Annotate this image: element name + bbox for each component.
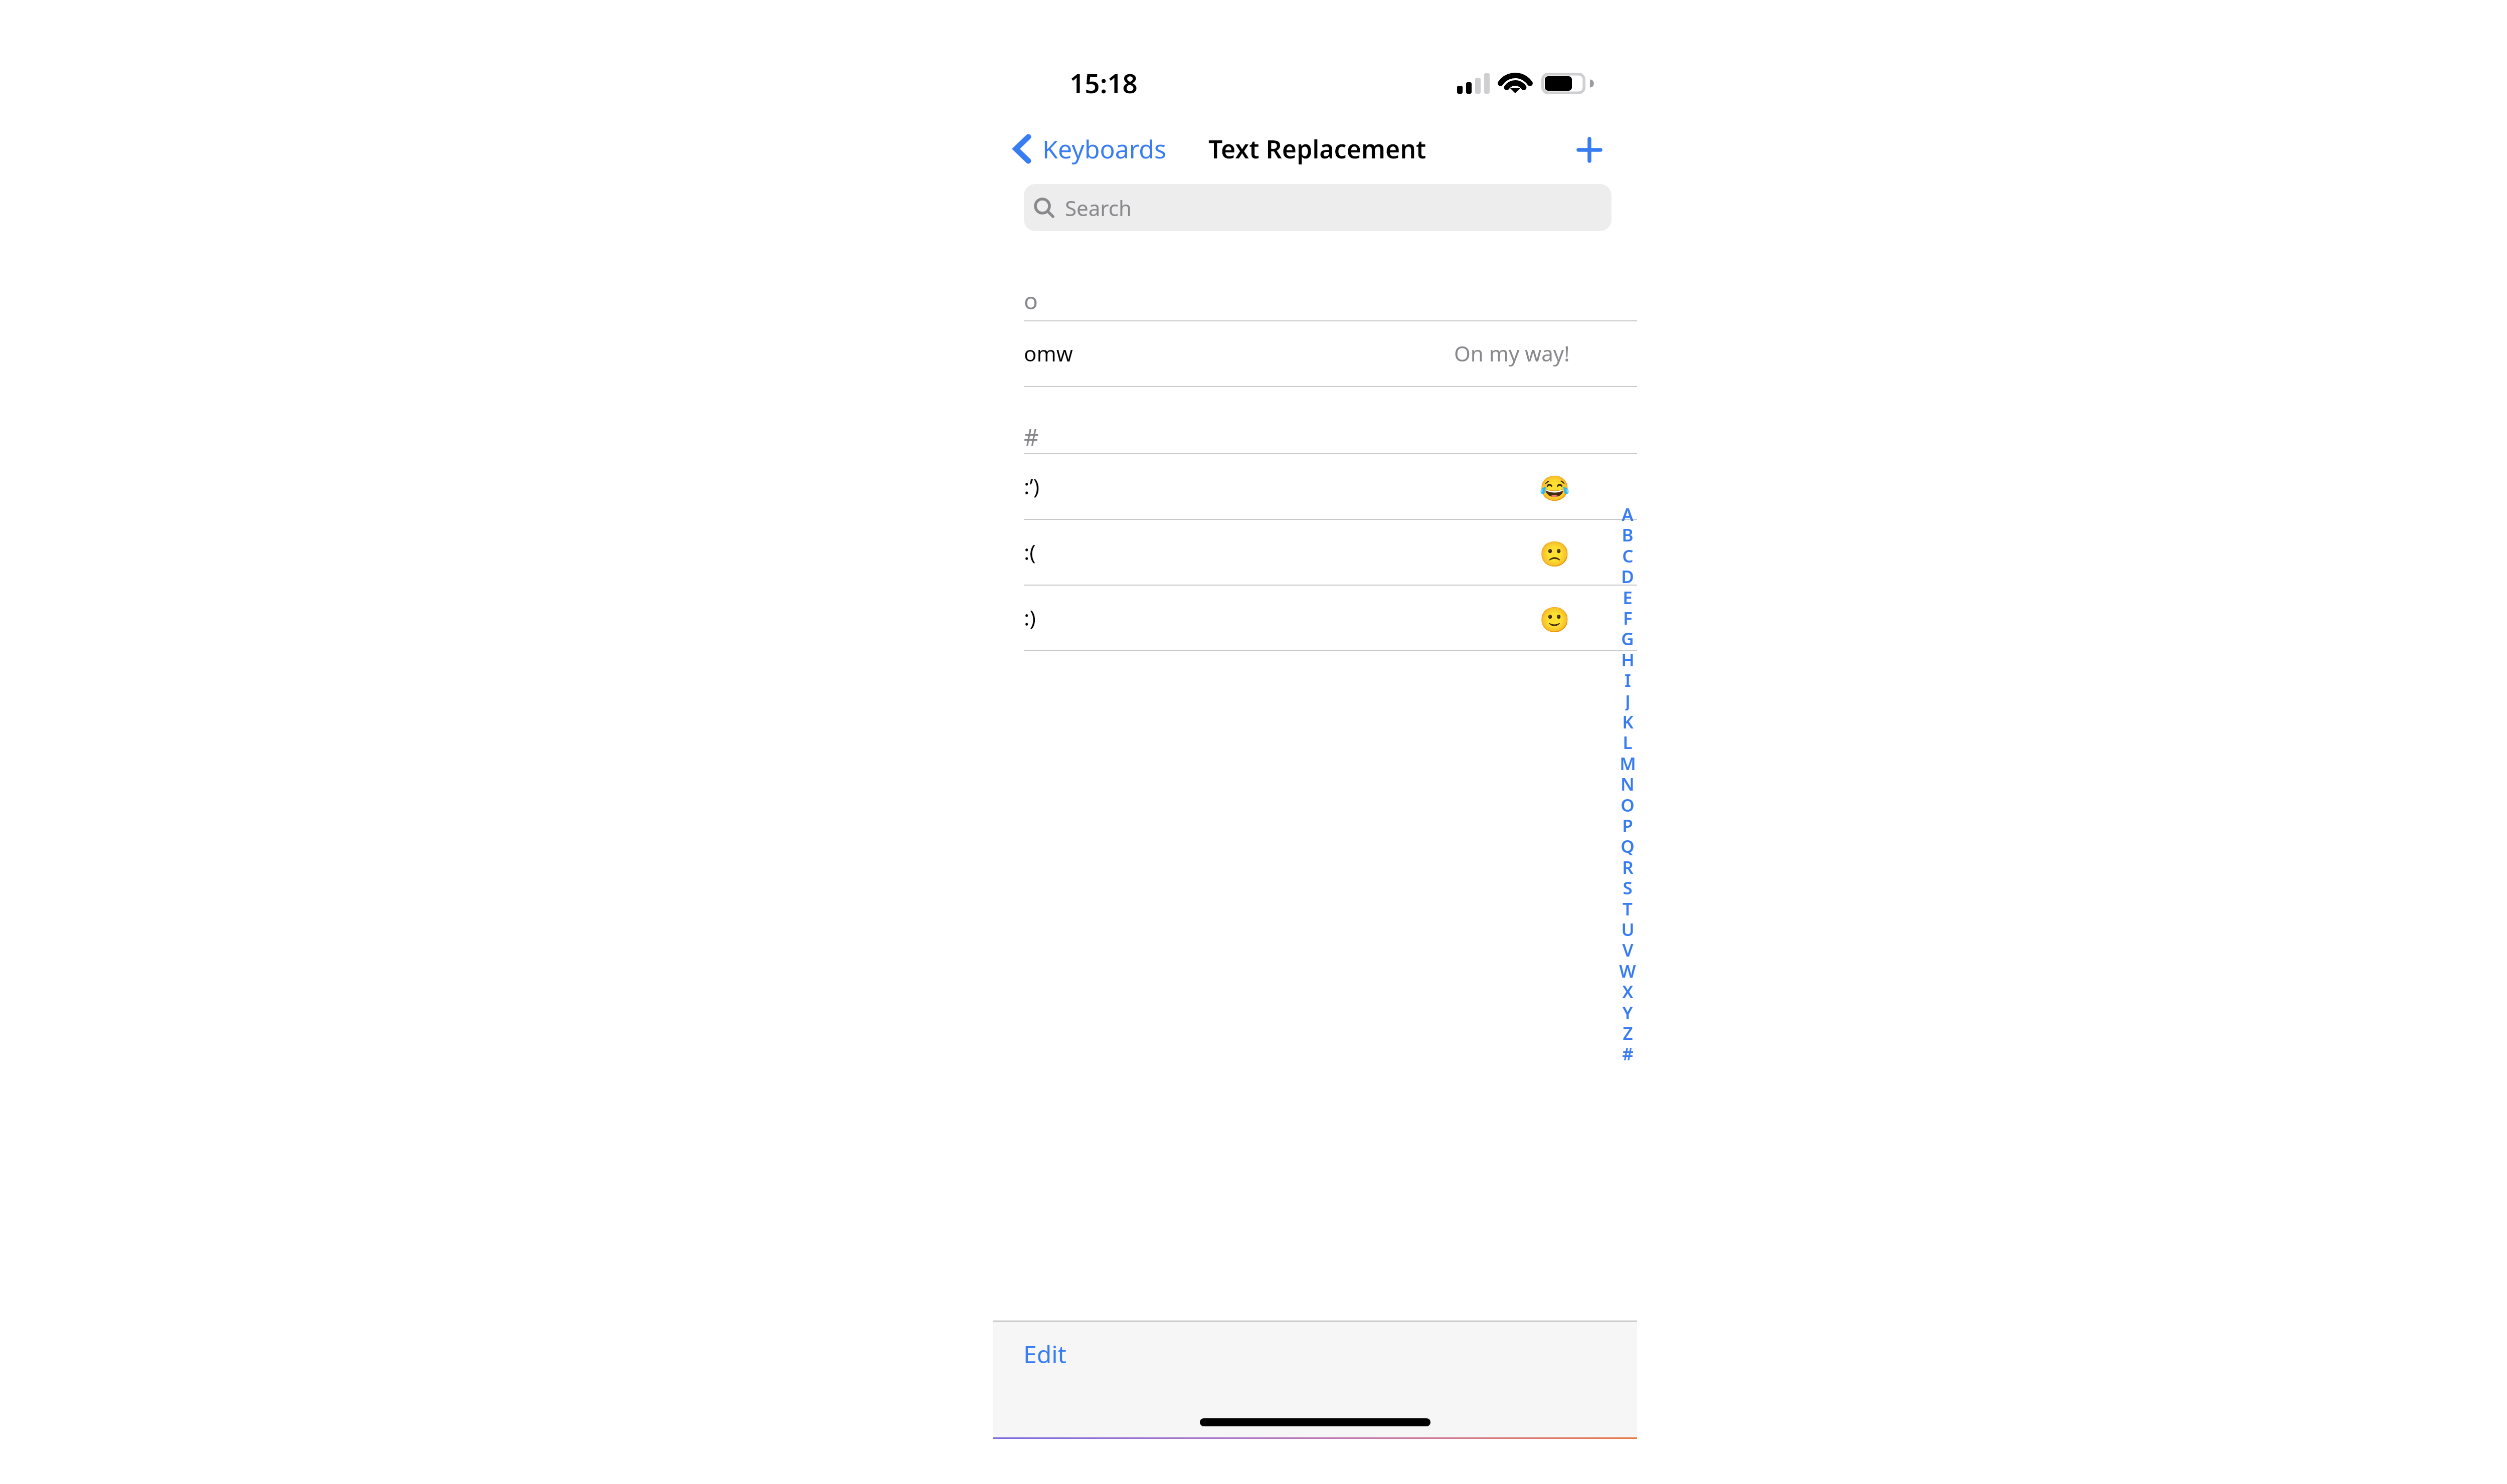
staticText: J — [1625, 689, 1631, 710]
staticText: Keyboards — [1042, 132, 1167, 166]
button[interactable]: F — [1613, 606, 1642, 627]
staticText: O — [1621, 793, 1635, 814]
staticText: o — [1024, 285, 1038, 315]
staticText: 😂 — [1539, 474, 1570, 503]
staticText: N — [1621, 772, 1635, 793]
button[interactable]: M — [1613, 752, 1642, 773]
button[interactable]: G — [1613, 627, 1642, 648]
button[interactable]: A — [1613, 502, 1642, 523]
button[interactable]: U — [1613, 917, 1642, 939]
staticText: # — [1622, 1042, 1634, 1063]
staticText: omw — [1024, 339, 1073, 367]
staticText: W — [1619, 959, 1636, 980]
button[interactable]: C — [1613, 544, 1642, 565]
staticText: P — [1622, 814, 1633, 835]
staticText: A — [1622, 502, 1634, 523]
button[interactable]: B — [1613, 523, 1642, 544]
staticText: F — [1623, 606, 1633, 627]
staticText: L — [1623, 730, 1633, 752]
staticText: T — [1623, 897, 1633, 918]
staticText: Q — [1621, 834, 1635, 855]
button[interactable]: E — [1613, 586, 1642, 607]
staticText: 🙂 — [1539, 606, 1570, 634]
button[interactable]: L — [1613, 730, 1642, 752]
staticText: :( — [1024, 537, 1036, 566]
staticText: K — [1622, 710, 1634, 731]
button[interactable]: P — [1613, 814, 1642, 835]
button[interactable]: Search text replacements — [1024, 184, 1611, 231]
staticText: R — [1622, 855, 1634, 876]
staticText: I — [1625, 668, 1631, 689]
button[interactable]: D — [1613, 565, 1642, 586]
staticText: Text Replacement — [1208, 132, 1426, 166]
button[interactable]: N — [1613, 772, 1642, 793]
button[interactable]: J — [1613, 689, 1642, 710]
button[interactable]: H — [1613, 648, 1642, 669]
button[interactable]: S — [1613, 876, 1642, 897]
staticText: # — [1024, 421, 1039, 451]
staticText: H — [1621, 648, 1635, 669]
button[interactable]: Edit — [1008, 1335, 1064, 1373]
staticText: G — [1621, 627, 1634, 648]
button[interactable]: K — [1613, 710, 1642, 731]
button[interactable]: Keyboards — [1011, 125, 1167, 173]
staticText: X — [1622, 980, 1634, 1001]
button[interactable]: Q — [1613, 834, 1642, 855]
button[interactable]: V — [1613, 938, 1642, 959]
button[interactable]: I — [1613, 668, 1642, 689]
staticText: :’) — [1024, 472, 1040, 500]
button[interactable]: omw — [993, 320, 1637, 386]
button[interactable]: :’) — [993, 453, 1637, 519]
button[interactable]: W — [1613, 959, 1642, 980]
staticText: D — [1621, 565, 1634, 586]
button[interactable]: # — [1613, 1042, 1642, 1063]
staticText: C — [1622, 544, 1634, 565]
staticText: 🙁 — [1539, 540, 1570, 569]
button[interactable]: Z — [1613, 1021, 1642, 1042]
button[interactable]: X — [1613, 980, 1642, 1001]
button[interactable]: :) — [993, 585, 1637, 650]
button[interactable]: Add text replacement — [1564, 125, 1615, 175]
staticText: M — [1620, 752, 1636, 773]
staticText: Search — [1065, 194, 1132, 222]
staticText: Edit — [1023, 1338, 1066, 1370]
button[interactable]: R — [1613, 855, 1642, 876]
staticText: S — [1623, 876, 1633, 897]
staticText: On my way! — [1454, 339, 1570, 367]
staticText: 15:18 — [1069, 65, 1138, 101]
button[interactable]: O — [1613, 793, 1642, 814]
other: Alphabetical section index — [1613, 502, 1642, 1074]
staticText: U — [1621, 917, 1635, 939]
staticText: Y — [1622, 1001, 1633, 1022]
button[interactable]: :( — [993, 519, 1637, 585]
staticText: B — [1622, 523, 1634, 544]
staticText: :) — [1024, 603, 1036, 632]
staticText: V — [1622, 938, 1634, 959]
staticText: Z — [1623, 1021, 1633, 1042]
button[interactable]: Y — [1613, 1001, 1642, 1022]
staticText: E — [1623, 586, 1633, 607]
button[interactable]: T — [1613, 897, 1642, 918]
